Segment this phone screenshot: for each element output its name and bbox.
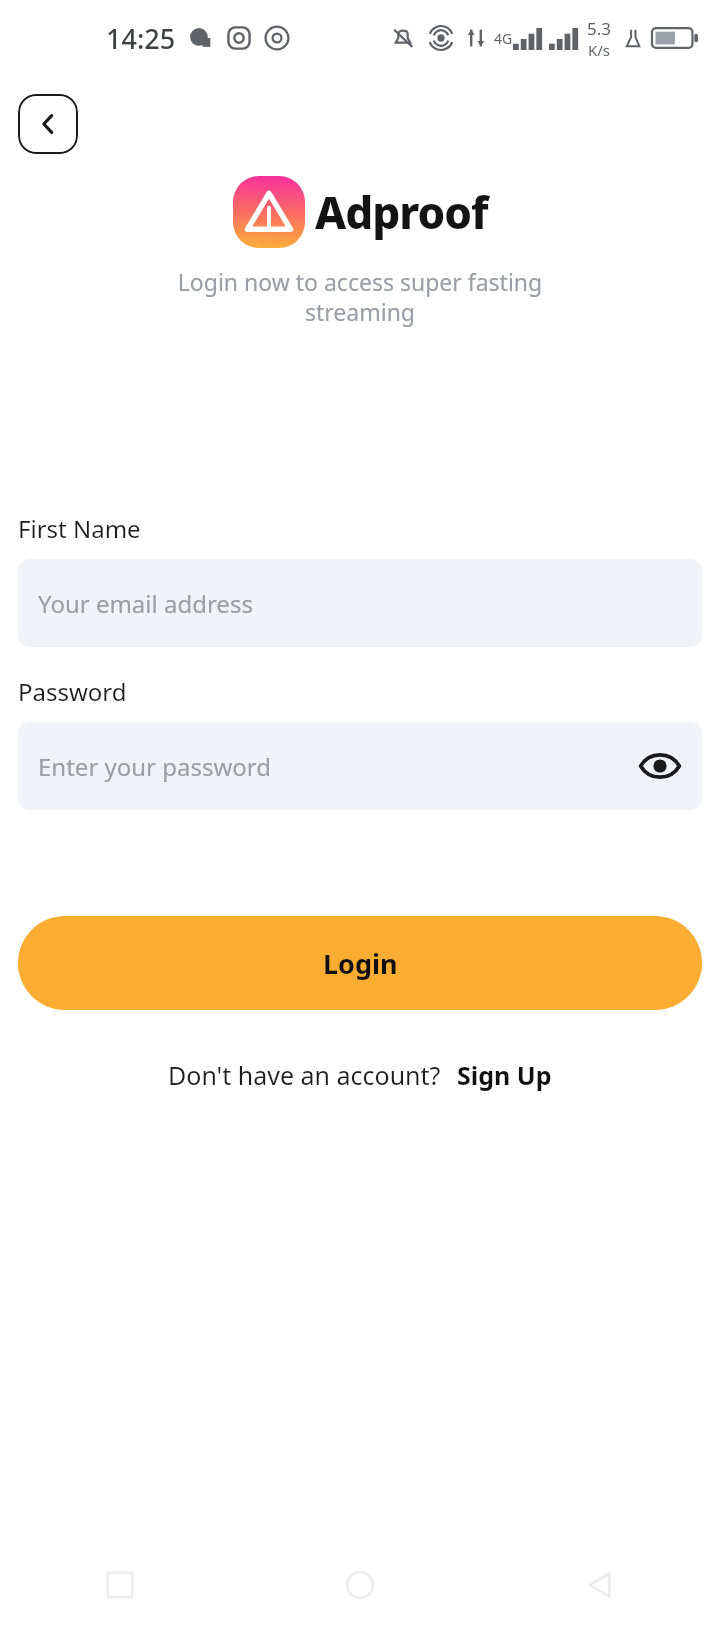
staticText: First Name bbox=[18, 512, 141, 545]
button[interactable]: Login bbox=[18, 916, 702, 1010]
staticText: 4G bbox=[494, 29, 513, 48]
staticText: Don't have an account? bbox=[168, 1058, 441, 1092]
button[interactable]: Enter your password bbox=[18, 722, 702, 810]
staticText: Your email address bbox=[38, 587, 253, 620]
staticText: 14:25 bbox=[106, 20, 176, 57]
staticText: Login now to access super fasting stream… bbox=[40, 266, 680, 327]
staticText: Adproof bbox=[315, 182, 488, 242]
staticText: K/s bbox=[588, 40, 611, 60]
staticText: Login bbox=[323, 945, 398, 982]
staticText: Password bbox=[18, 675, 127, 708]
button[interactable]: Back bbox=[18, 94, 78, 154]
staticText: Sign Up bbox=[457, 1058, 552, 1092]
button[interactable]: Sign Up bbox=[457, 1058, 552, 1092]
button[interactable]: Show password bbox=[632, 738, 688, 794]
staticText: Enter your password bbox=[38, 750, 272, 783]
staticText: 5.3 bbox=[587, 17, 612, 40]
button[interactable]: Your email address bbox=[18, 559, 702, 647]
